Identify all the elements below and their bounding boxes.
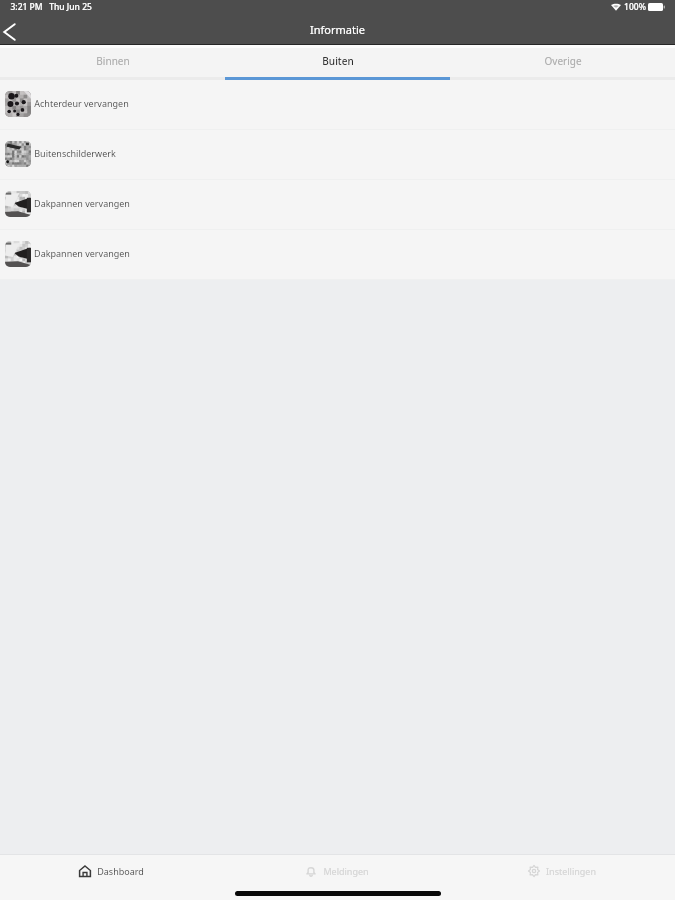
- staticText: Thu Jun 25: [49, 1, 92, 13]
- staticText: Buitenschilderwerk: [34, 147, 116, 159]
- staticText: Dashboard: [97, 865, 144, 877]
- staticText: Informatie: [310, 22, 365, 37]
- button[interactable]: Back: [0, 21, 22, 44]
- staticText: Meldingen: [323, 865, 369, 877]
- button[interactable]: Dashboard: [0, 855, 225, 886]
- staticText: 3:21 PM: [10, 1, 43, 13]
- button[interactable]: Overige: [450, 48, 675, 80]
- staticText: Overige: [544, 54, 582, 68]
- button[interactable]: Instellingen: [450, 855, 675, 886]
- staticText: Dakpannen vervangen: [34, 197, 130, 209]
- staticText: Binnen: [96, 54, 130, 68]
- button[interactable]: Achterdeur vervangen: [0, 80, 675, 129]
- button[interactable]: Buiten: [225, 48, 450, 80]
- button[interactable]: Dakpannen vervangen: [0, 180, 675, 229]
- staticText: Dakpannen vervangen: [34, 247, 130, 259]
- staticText: Buiten: [322, 54, 354, 68]
- staticText: 100%: [624, 1, 646, 13]
- button[interactable]: Meldingen: [225, 855, 450, 886]
- staticText: Instellingen: [546, 865, 596, 877]
- staticText: Achterdeur vervangen: [34, 97, 129, 109]
- button[interactable]: Dakpannen vervangen: [0, 230, 675, 279]
- button[interactable]: Buitenschilderwerk: [0, 130, 675, 179]
- button[interactable]: Binnen: [0, 48, 225, 80]
